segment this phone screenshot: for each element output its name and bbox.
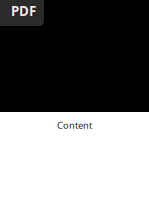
- staticText: PDF: [11, 2, 36, 20]
- staticText: Content: [57, 119, 92, 131]
- button[interactable]: PDF: [0, 0, 44, 26]
